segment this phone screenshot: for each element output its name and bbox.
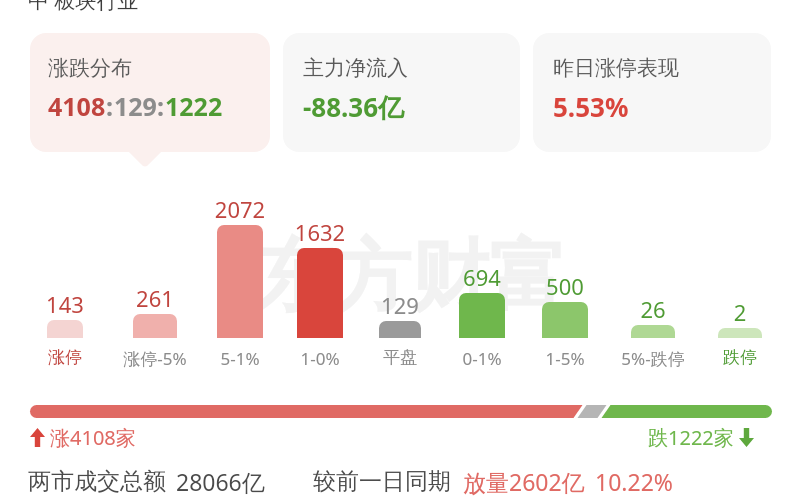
- staticText: 500: [520, 271, 610, 301]
- staticText: 4108: [48, 89, 106, 123]
- staticText: 5-1%: [180, 347, 300, 370]
- staticText: 1-0%: [260, 347, 380, 370]
- staticText: 主力净流入: [303, 55, 408, 81]
- button[interactable]: [30, 405, 772, 418]
- button[interactable]: 昨日涨停表现: [533, 33, 771, 152]
- staticText: 东方财富: [255, 228, 567, 326]
- staticText: :: [106, 89, 114, 123]
- staticText: 平盘: [340, 347, 460, 368]
- button[interactable]: 主力净流入: [283, 33, 520, 152]
- staticText: 涨停-5%: [95, 347, 215, 370]
- staticText: 129: [114, 89, 157, 123]
- button[interactable]: [718, 328, 762, 338]
- staticText: 261: [110, 283, 200, 313]
- staticText: 26: [608, 294, 698, 324]
- staticText: 两市成交总额: [28, 467, 166, 496]
- staticText: :: [157, 89, 165, 123]
- staticText: 涨跌分布: [48, 55, 132, 81]
- button[interactable]: [542, 302, 588, 338]
- staticText: 5%-跌停: [593, 347, 713, 370]
- staticText: 昨日涨停表现: [553, 55, 679, 81]
- staticText: 0-1%: [422, 347, 542, 370]
- staticText: 1222: [165, 89, 223, 123]
- staticText: 694: [437, 262, 527, 292]
- staticText: 跌停: [680, 347, 800, 368]
- button[interactable]: 下跌家数: [648, 424, 754, 451]
- staticText: -88.36亿: [303, 89, 405, 125]
- button[interactable]: [459, 293, 505, 338]
- button[interactable]: [217, 225, 263, 338]
- button[interactable]: [47, 320, 83, 338]
- staticText: 放量2602亿: [463, 466, 585, 497]
- staticText: 跌1222家: [648, 424, 734, 451]
- staticText: 1-5%: [505, 347, 625, 370]
- button[interactable]: 涨跌分布: [30, 33, 270, 152]
- staticText: 较前一日同期: [313, 467, 451, 496]
- button[interactable]: [297, 248, 343, 338]
- staticText: 129: [355, 290, 445, 320]
- button[interactable]: [631, 325, 675, 338]
- button[interactable]: [133, 314, 177, 338]
- staticText: 1632: [275, 217, 365, 247]
- staticText: 2: [695, 297, 785, 327]
- staticText: 10.22%: [595, 466, 673, 497]
- button[interactable]: [379, 321, 421, 338]
- staticText: 2072: [195, 194, 285, 224]
- staticText: 143: [20, 289, 110, 319]
- staticText: 涨停: [5, 347, 125, 368]
- staticText: 5.53%: [553, 89, 629, 124]
- staticText: 28066亿: [176, 466, 265, 497]
- staticText: 中 板块行业: [28, 0, 139, 15]
- staticText: 涨4108家: [50, 424, 136, 451]
- button[interactable]: 上涨家数: [30, 424, 136, 451]
